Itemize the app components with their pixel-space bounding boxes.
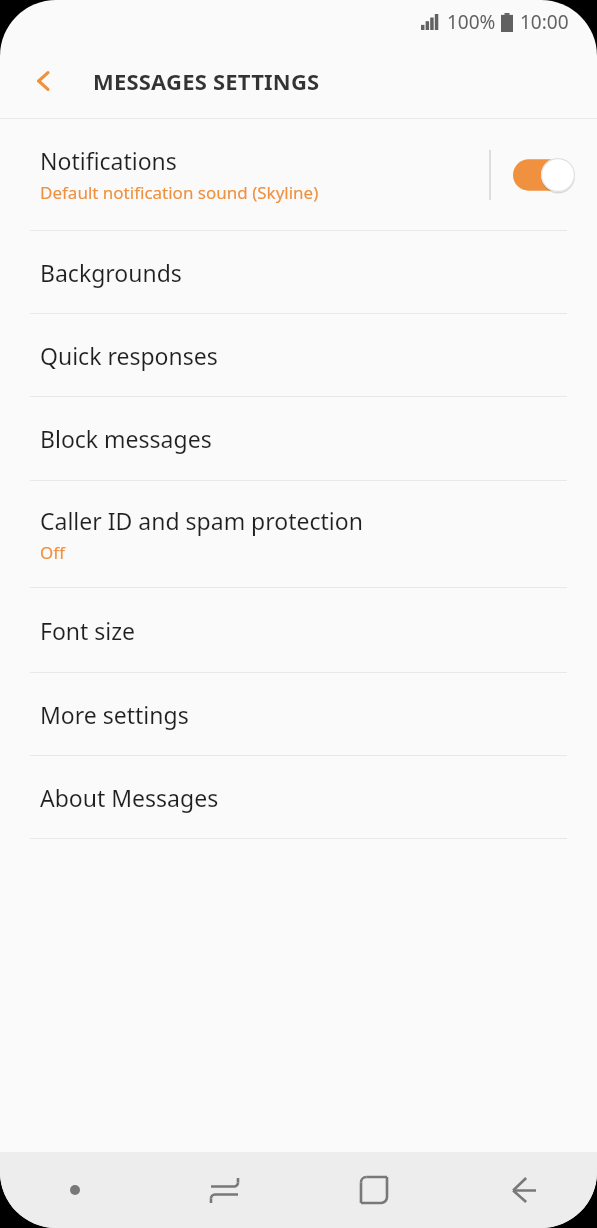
button[interactable]: Font size [0, 588, 597, 672]
staticText: Font size [40, 615, 136, 646]
button[interactable]: Back [448, 1152, 597, 1228]
button[interactable]: Recent apps [150, 1152, 299, 1228]
button[interactable]: Navigate up [16, 53, 72, 109]
button[interactable]: Backgrounds [0, 231, 597, 313]
button[interactable]: Block messages [0, 397, 597, 480]
button[interactable]: Quick responses [0, 314, 597, 396]
staticText: 100% [447, 9, 496, 35]
staticText: More settings [40, 699, 189, 730]
staticText: Quick responses [40, 340, 218, 371]
staticText: Block messages [40, 423, 212, 454]
button[interactable]: Home [299, 1152, 448, 1228]
staticText: Default notification sound (Skyline) [40, 181, 319, 204]
button[interactable]: Notifications toggle [491, 119, 597, 230]
button[interactable]: Caller ID and spam protection [0, 481, 597, 587]
staticText: MESSAGES SETTINGS [93, 66, 320, 96]
button[interactable]: About Messages [0, 756, 597, 838]
staticText: Backgrounds [40, 257, 182, 288]
staticText: Notifications [40, 145, 177, 176]
staticText: About Messages [40, 782, 219, 813]
button[interactable]: More settings [0, 673, 597, 755]
staticText: Caller ID and spam protection [40, 505, 363, 536]
button[interactable]: Menu [0, 1152, 150, 1228]
button[interactable]: Notifications [0, 119, 597, 230]
staticText: 10:00 [520, 9, 569, 35]
staticText: Off [40, 541, 65, 564]
